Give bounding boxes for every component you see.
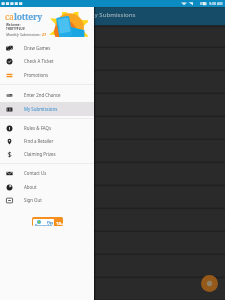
staticText: 89% 9:08 AM — [200, 1, 223, 6]
button[interactable]: Play — [32, 217, 63, 226]
button[interactable]: Enter 2nd Chance — [0, 88, 94, 102]
staticText: Contact Us — [24, 170, 47, 176]
staticText: lottery — [14, 11, 42, 23]
button[interactable]: My Submissions — [0, 102, 94, 116]
staticText: Welcome: — [6, 23, 21, 27]
staticText: 18+ — [56, 221, 63, 226]
button[interactable]: Claiming Prizes — [0, 147, 94, 161]
staticText: Monthly Submissions: — [6, 32, 42, 37]
button[interactable]: Add submission — [201, 275, 218, 292]
staticText: Check A Ticket — [24, 58, 54, 64]
button[interactable]: Check A Ticket — [0, 54, 94, 68]
staticText: ca — [5, 11, 14, 23]
staticText: Claiming Prizes — [24, 151, 56, 157]
staticText: My Submissions — [24, 106, 58, 112]
staticText: Find a Retailer — [24, 138, 54, 144]
staticText: Sign Out — [24, 197, 42, 203]
staticText: Promotions — [24, 72, 48, 78]
staticText: Responsibly — [35, 224, 53, 226]
staticText: Draw Games — [24, 45, 51, 51]
button[interactable]: Contact Us — [0, 166, 94, 180]
button[interactable]: About — [0, 180, 94, 194]
staticText: About — [24, 184, 37, 190]
staticText: Play — [47, 221, 54, 225]
button[interactable]: Draw Games — [0, 41, 94, 55]
staticText: Enter 2nd Chance — [24, 92, 61, 98]
staticText: Rules & FAQs — [24, 125, 52, 131]
button[interactable]: Find a Retailer — [0, 134, 94, 148]
staticText: My Submissions — [89, 11, 136, 19]
button[interactable]: Sign Out — [0, 193, 94, 207]
button[interactable]: Promotions — [0, 68, 94, 82]
button[interactable]: Rules & FAQs — [0, 121, 94, 135]
staticText: THIRTYPLUS! — [6, 27, 26, 31]
staticText: 21 — [42, 32, 46, 37]
